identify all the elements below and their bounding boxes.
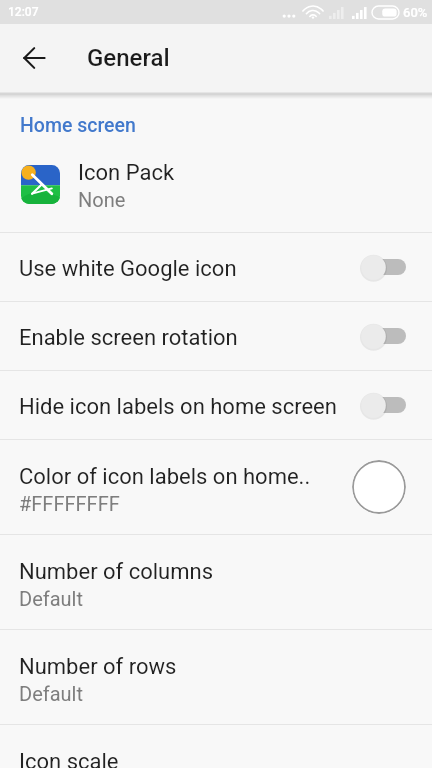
staticText: Icon Pack: [78, 160, 175, 186]
button[interactable]: Navigate up: [11, 34, 59, 82]
staticText: #FFFFFFFF: [19, 492, 120, 515]
staticText: Default: [19, 587, 83, 610]
staticText: None: [78, 188, 126, 211]
button[interactable]: Number of rows: [0, 630, 432, 724]
button[interactable]: Color of icon labels on home..: [0, 440, 432, 534]
button[interactable]: Hide icon labels on home screen: [0, 371, 432, 439]
staticText: 12:07: [8, 5, 39, 19]
button[interactable]: Use white Google icon: [0, 233, 432, 301]
staticText: General: [87, 44, 170, 72]
staticText: Default: [19, 682, 83, 705]
button[interactable]: Icon scale: [0, 725, 432, 768]
staticText: Enable screen rotation: [19, 325, 360, 351]
staticText: Use white Google icon: [19, 256, 360, 282]
button[interactable]: Pick label colour: [352, 460, 406, 514]
button[interactable]: Icon Pack: [0, 150, 432, 232]
staticText: Color of icon labels on home..: [19, 464, 311, 490]
button[interactable]: Number of columns: [0, 535, 432, 629]
staticText: Icon scale: [19, 749, 119, 768]
staticText: Home screen: [20, 114, 136, 137]
staticText: Number of columns: [19, 559, 214, 585]
button[interactable]: Enable screen rotation: [0, 302, 432, 370]
staticText: Number of rows: [19, 654, 177, 680]
staticText: Hide icon labels on home screen: [19, 394, 360, 420]
staticText: 60%: [403, 5, 428, 20]
